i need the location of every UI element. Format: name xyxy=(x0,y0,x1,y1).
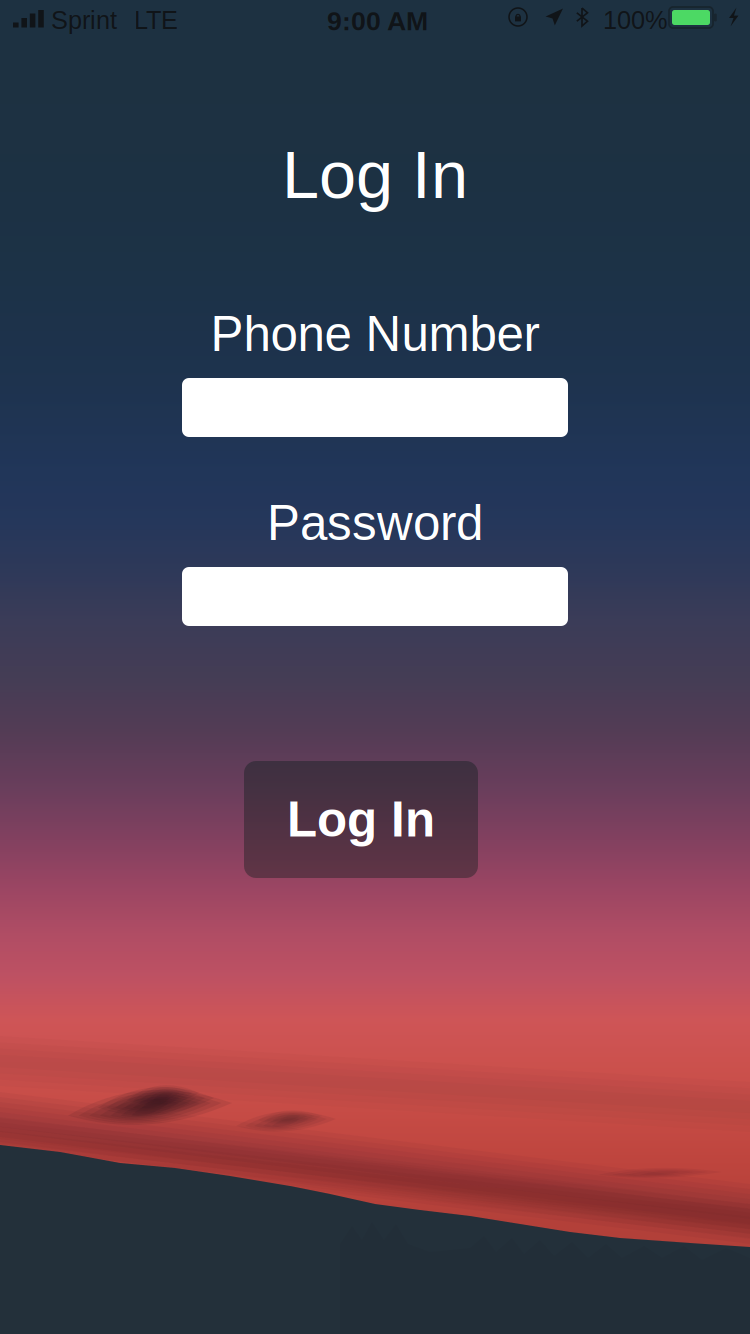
staticText: Log In xyxy=(287,792,435,847)
staticText: Log In xyxy=(282,138,468,212)
staticText: Password xyxy=(267,495,483,550)
staticText: LTE xyxy=(134,6,178,34)
staticText: 9:00 AM xyxy=(327,6,428,36)
staticText: Sprint xyxy=(51,6,117,34)
staticText: 100% xyxy=(603,6,668,34)
button[interactable]: Log In xyxy=(244,761,478,878)
staticText: Phone Number xyxy=(210,306,539,361)
